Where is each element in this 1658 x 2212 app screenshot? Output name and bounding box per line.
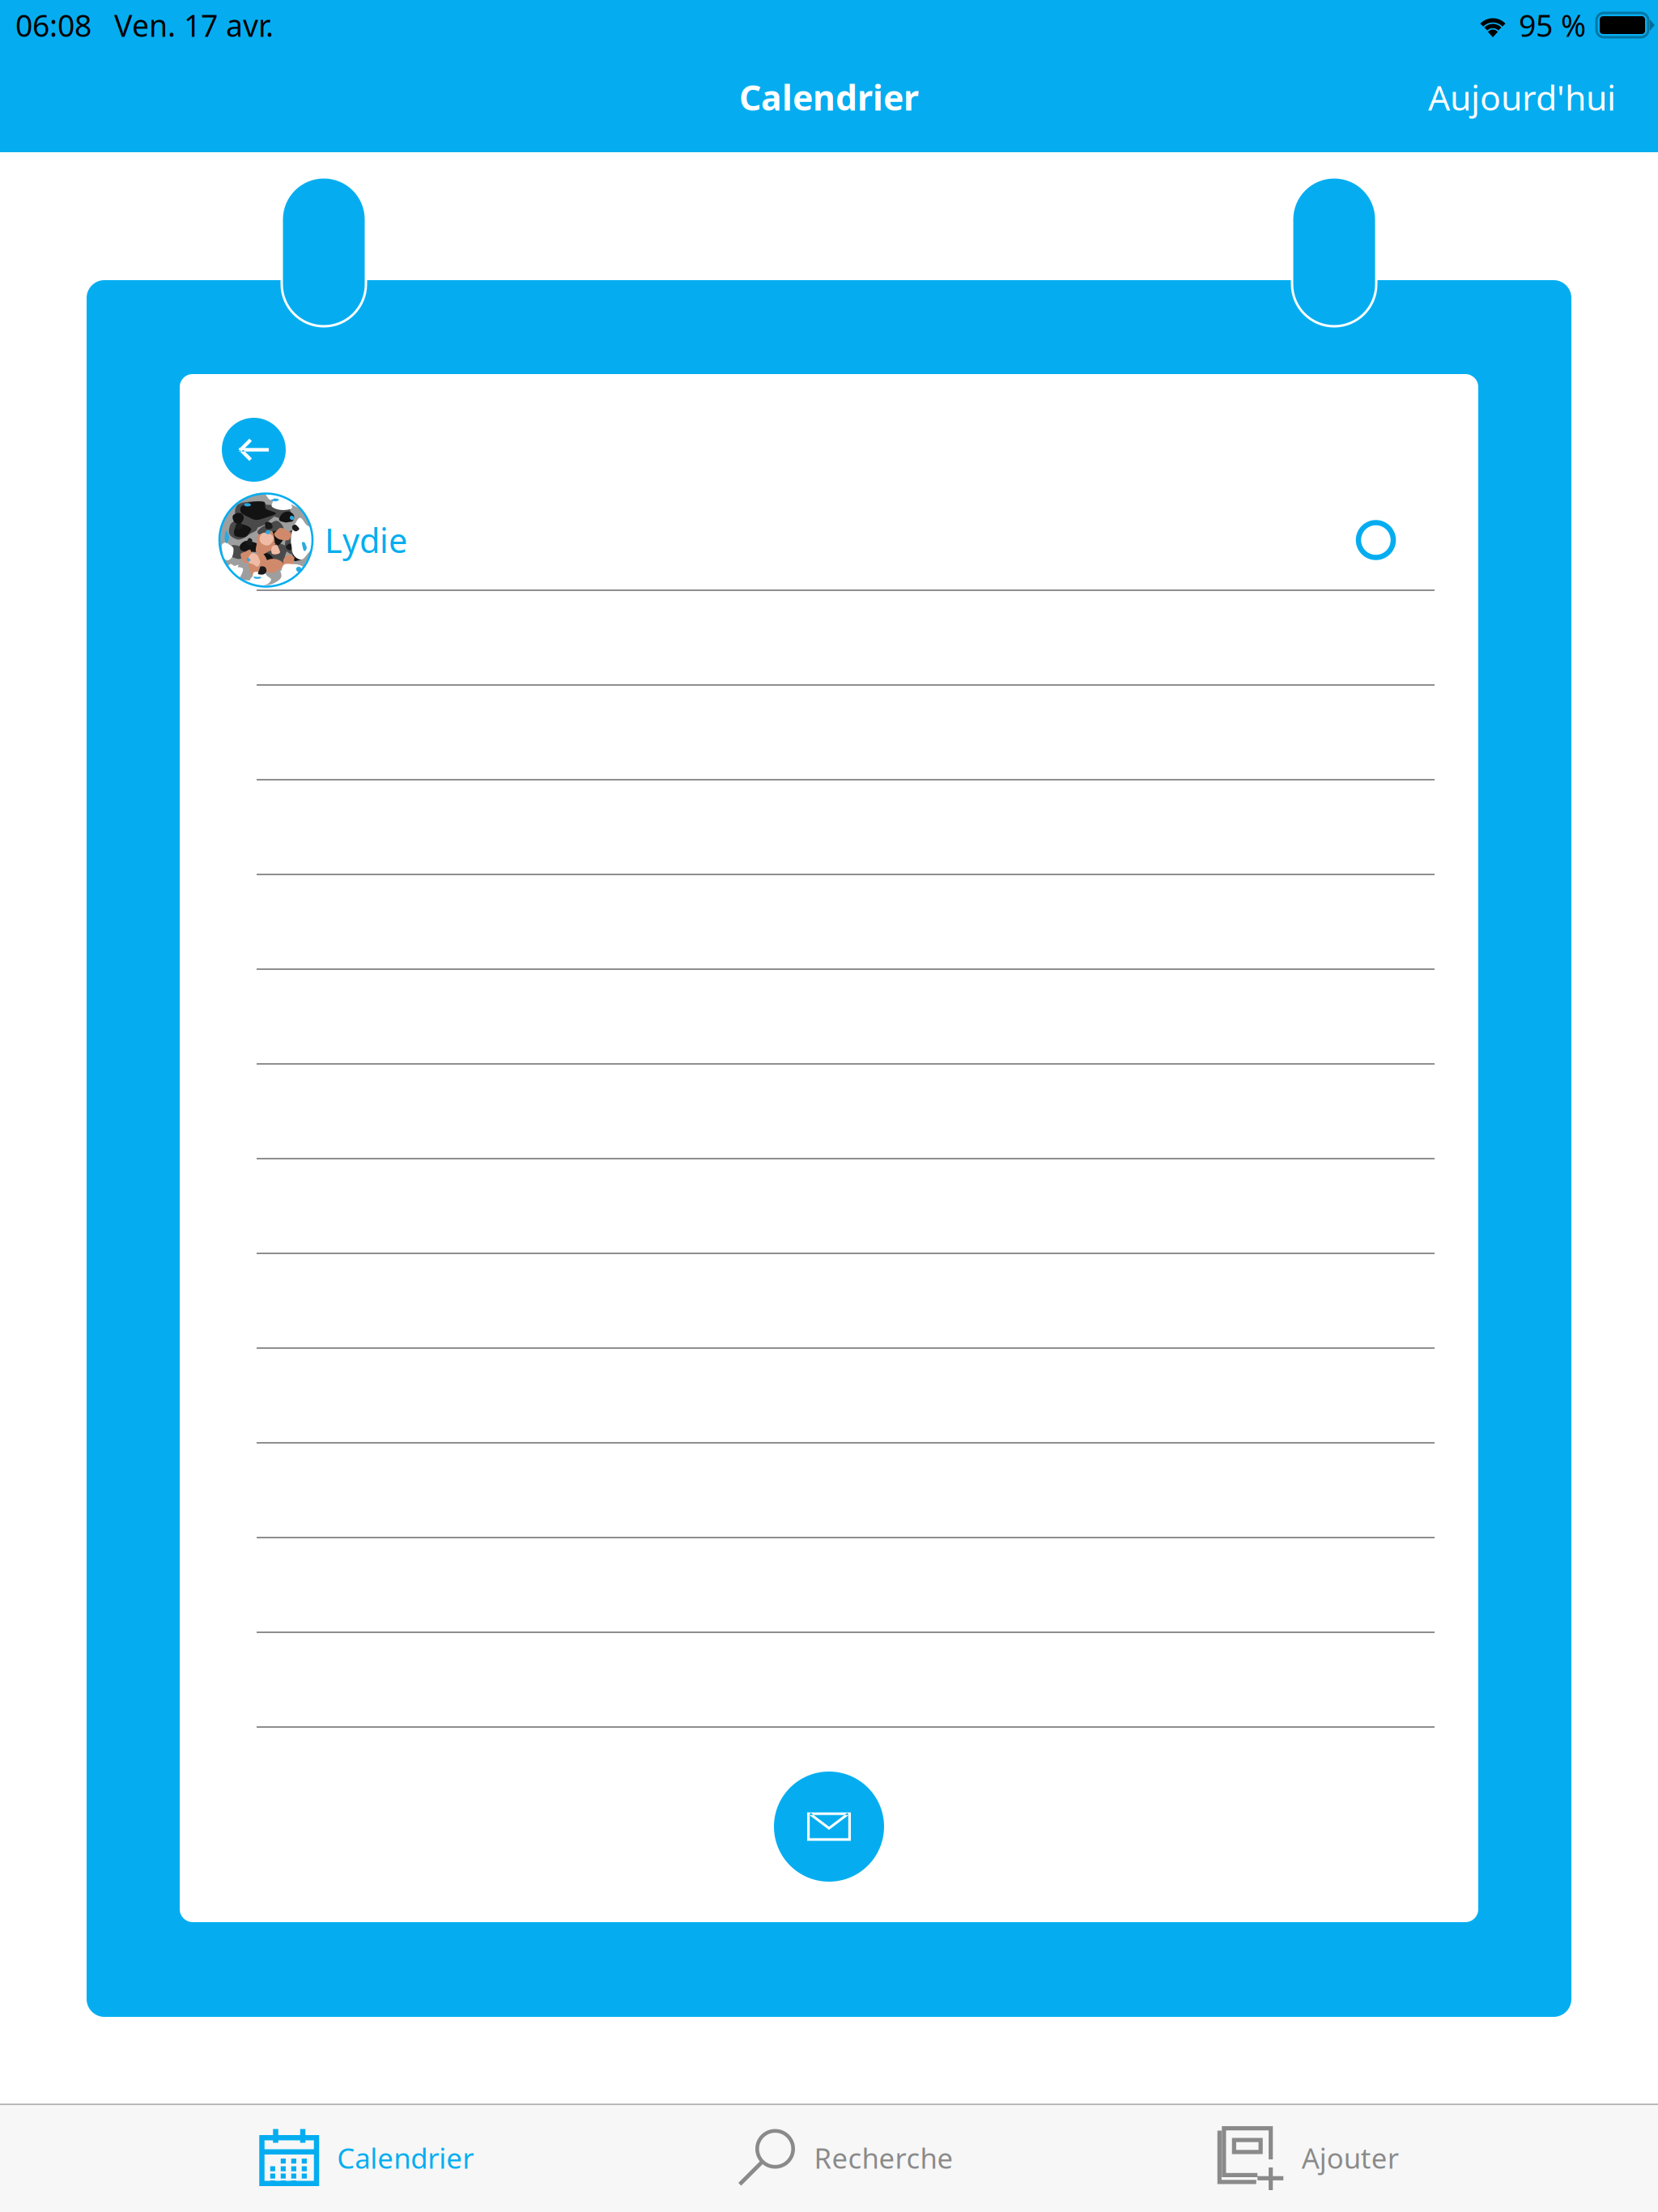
button[interactable]: Envoyer un message [774,1772,884,1882]
staticText: Ajouter [1302,2139,1399,2176]
staticText: 95 % [1519,5,1586,45]
button[interactable]: Ajouter [1213,2104,1404,2211]
staticText: Calendrier [739,74,919,120]
button[interactable]: Calendrier [254,2104,479,2211]
staticText: Lydie [325,518,407,562]
staticText: Ven. 17 avr. [114,5,274,45]
staticText: Aujourd'hui [1428,74,1616,120]
button[interactable]: Aujourd'hui [1418,74,1626,128]
button[interactable]: Retour [222,418,286,482]
staticText: Calendrier [337,2139,474,2176]
button[interactable]: Recherche [733,2104,958,2211]
button[interactable]: Lydie [180,492,1478,588]
staticText: 06:08 [15,5,91,45]
staticText: Recherche [814,2139,953,2176]
